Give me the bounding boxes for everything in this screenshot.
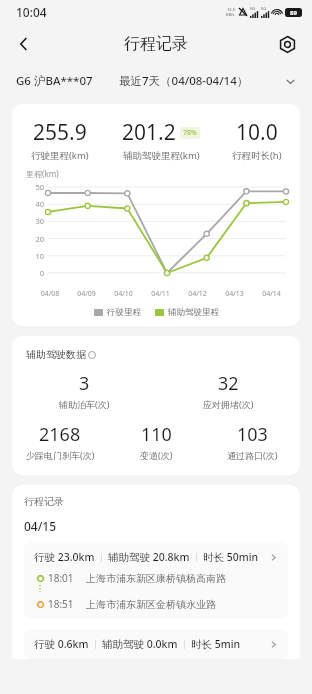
staticText: 5G <box>261 6 267 11</box>
staticText: 3 <box>79 371 90 396</box>
staticText: 0 <box>24 268 44 278</box>
staticText: 103 <box>237 422 268 447</box>
staticText: 10.0 <box>236 118 278 147</box>
staticText: 04/11 <box>142 289 179 299</box>
staticText: 行程时长(h) <box>232 149 282 162</box>
staticText: 上海市浦东新区金桥镇永业路 <box>86 598 216 611</box>
staticText: 行驶 23.0km <box>34 550 95 564</box>
staticText: 04/15 <box>24 518 57 534</box>
staticText: 最近7天（04/08-04/14） <box>119 73 249 89</box>
staticText: KB/s <box>226 12 235 17</box>
button[interactable]: Back <box>6 26 42 62</box>
staticText: 变道(次) <box>140 449 173 461</box>
staticText: 行驶里程 <box>107 307 141 318</box>
staticText: 110 <box>141 422 172 447</box>
staticText: 2168 <box>39 422 81 447</box>
staticText: 04/08 <box>32 289 68 299</box>
staticText: 上海市浦东新区康桥镇杨高南路 <box>86 572 226 585</box>
staticText: 04/13 <box>216 289 253 299</box>
staticText: 04/10 <box>105 289 142 299</box>
staticText: 辅助驾驶 20.8km <box>108 550 190 564</box>
staticText: 12.5 <box>227 7 235 12</box>
staticText: 10 <box>24 251 44 261</box>
staticText: G6 沪BA***07 <box>16 73 93 89</box>
staticText: 行驶 0.6km <box>34 637 89 651</box>
staticText: 少踩电门刹车(次) <box>26 449 95 461</box>
staticText: 时长 5min <box>191 637 241 651</box>
staticText: 89 <box>290 9 297 17</box>
button[interactable]: G6 沪BA***07 <box>16 73 93 89</box>
staticText: 辅助驾驶数据 <box>26 348 86 361</box>
staticText: 辅助驾驶 0.0km <box>102 637 178 651</box>
staticText: 04/09 <box>68 289 105 299</box>
staticText: 应对拥堵(次) <box>203 398 254 410</box>
staticText: 5G <box>250 6 256 11</box>
staticText: 78% <box>183 128 197 138</box>
button[interactable]: 行驶 23.0km <box>24 542 288 619</box>
button[interactable]: 行驶 0.6km <box>24 629 288 659</box>
staticText: 18:01 <box>48 571 74 585</box>
staticText: 辅助驾驶里程(km) <box>123 149 200 162</box>
staticText: 10:04 <box>16 4 47 20</box>
staticText: 18:51 <box>48 597 74 611</box>
staticText: 通过路口(次) <box>227 449 278 461</box>
staticText: 04/12 <box>179 289 216 299</box>
staticText: 32 <box>218 371 239 396</box>
staticText: 50 <box>24 182 44 192</box>
staticText: 行驶里程(km) <box>31 149 89 162</box>
staticText: 40 <box>24 199 44 209</box>
staticText: 201.2 <box>122 118 176 147</box>
staticText: 辅助驾驶里程 <box>168 307 219 318</box>
staticText: 20 <box>24 234 44 244</box>
staticText: 30 <box>24 216 44 226</box>
staticText: 时长 50min <box>203 550 259 564</box>
staticText: 里程(km) <box>26 168 59 179</box>
staticText: 行程记录 <box>24 495 64 508</box>
button[interactable]: Settings <box>270 27 304 61</box>
staticText: 辅助泊车(次) <box>59 398 110 410</box>
staticText: 04/14 <box>253 289 290 299</box>
staticText: 255.9 <box>33 118 87 147</box>
staticText: 行程记录 <box>124 34 188 54</box>
button[interactable]: 最近7天（04/08-04/14） <box>119 73 296 89</box>
